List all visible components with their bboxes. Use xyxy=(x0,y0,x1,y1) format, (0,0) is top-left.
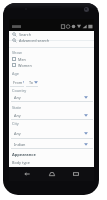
staticText: State xyxy=(12,105,22,110)
button[interactable]: Men xyxy=(9,56,94,62)
button[interactable]: Back xyxy=(20,167,34,181)
button[interactable]: Any xyxy=(11,93,93,102)
staticText: Any xyxy=(14,131,21,136)
button[interactable]: Any xyxy=(11,111,93,120)
staticText: Age xyxy=(12,71,19,76)
staticText: Body type xyxy=(12,160,30,165)
button[interactable]: Advanced search xyxy=(9,37,94,44)
staticText: Advanced search xyxy=(19,38,50,43)
staticText: Show xyxy=(12,50,22,55)
button[interactable]: Search xyxy=(9,31,94,38)
staticText: Search xyxy=(19,32,32,37)
staticText: Men xyxy=(18,57,26,62)
button[interactable]: Indian xyxy=(11,140,93,149)
button[interactable]: Women xyxy=(9,62,94,68)
staticText: Any xyxy=(14,113,21,118)
staticText: Appearance xyxy=(12,152,36,157)
button[interactable]: From xyxy=(10,78,24,87)
staticText: Women xyxy=(18,63,32,68)
staticText: Country xyxy=(12,88,27,93)
button[interactable]: Home xyxy=(45,167,59,181)
staticText: From xyxy=(13,80,23,85)
staticText: City xyxy=(12,121,19,126)
staticText: To xyxy=(29,80,34,85)
button[interactable]: Recent apps xyxy=(69,167,83,181)
button[interactable]: Any xyxy=(11,129,93,139)
staticText: Any xyxy=(14,95,21,100)
staticText: Indian xyxy=(14,142,26,147)
button[interactable]: To xyxy=(26,78,38,87)
